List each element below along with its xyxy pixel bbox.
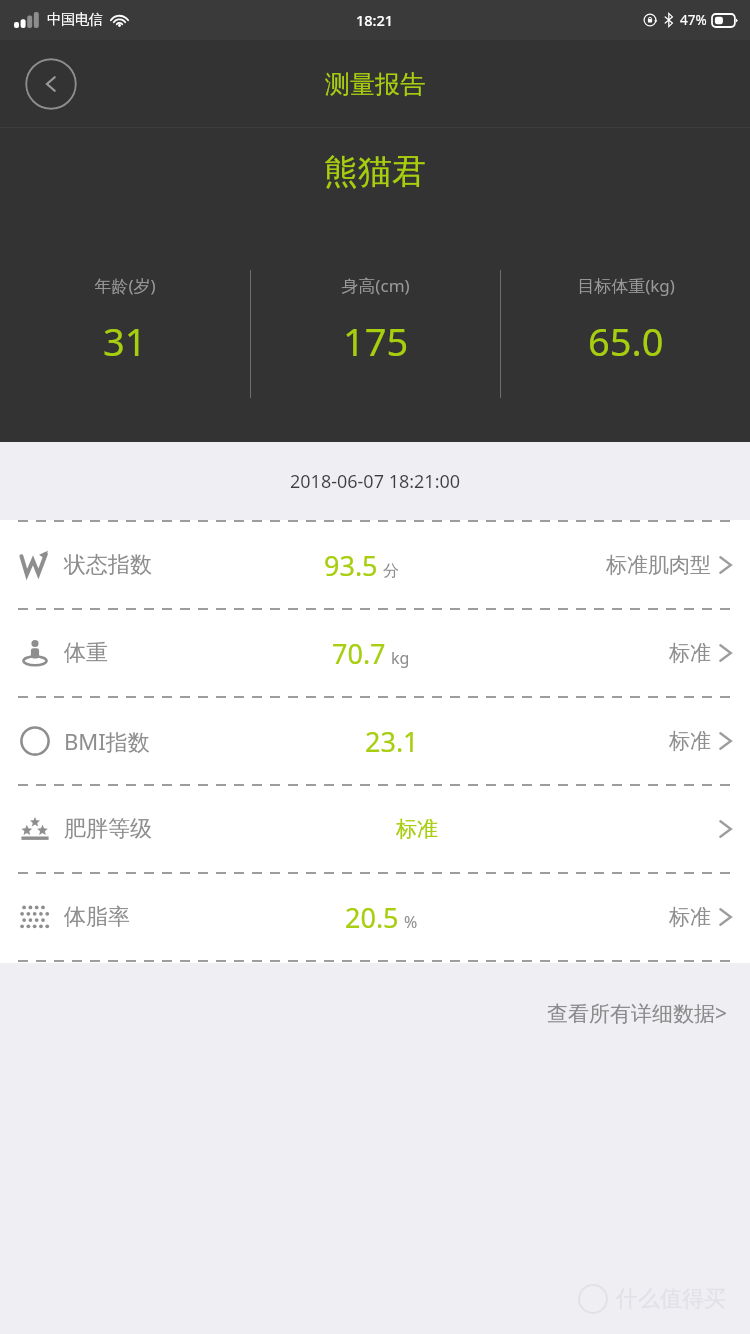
- staticText: 状态指数: [64, 551, 152, 579]
- button[interactable]: 体脂率: [0, 874, 750, 960]
- staticText: 熊猫君: [324, 150, 426, 193]
- staticText: kg: [391, 647, 410, 669]
- staticText: 20.5: [345, 899, 399, 936]
- staticText: 身高(cm): [341, 274, 410, 297]
- button[interactable]: 状态指数: [0, 522, 750, 608]
- staticText: 肥胖等级: [64, 815, 152, 843]
- staticText: 47%: [680, 11, 707, 29]
- button[interactable]: 肥胖等级: [0, 786, 750, 872]
- staticText: 2018-06-07 18:21:00: [290, 469, 461, 494]
- staticText: 70.7: [332, 635, 386, 672]
- staticText: 标准: [669, 904, 711, 930]
- button[interactable]: Back: [25, 58, 77, 110]
- staticText: 175: [343, 315, 409, 367]
- staticText: 标准: [669, 728, 711, 754]
- staticText: 23.1: [365, 723, 419, 760]
- button[interactable]: BMI指数: [0, 698, 750, 784]
- staticText: 标准: [669, 640, 711, 666]
- staticText: 年龄(岁): [94, 274, 156, 297]
- staticText: 65.0: [588, 315, 664, 367]
- staticText: 18:21: [356, 10, 394, 30]
- staticText: 体脂率: [64, 903, 130, 931]
- staticText: 标准: [396, 816, 438, 842]
- button[interactable]: 查看所有详细数据>: [539, 989, 736, 1038]
- staticText: 查看所有详细数据>: [547, 999, 728, 1028]
- staticText: 什么值得买: [616, 1285, 726, 1313]
- staticText: %: [404, 911, 418, 933]
- staticText: 中国电信: [47, 11, 103, 29]
- staticText: 31: [103, 315, 147, 367]
- staticText: 93.5: [324, 547, 378, 584]
- staticText: 分: [383, 561, 399, 581]
- staticText: BMI指数: [64, 726, 150, 756]
- staticText: 目标体重(kg): [577, 274, 675, 297]
- staticText: 体重: [64, 639, 108, 667]
- staticText: 标准肌肉型: [606, 552, 711, 578]
- staticText: 测量报告: [325, 69, 425, 100]
- button[interactable]: 体重: [0, 610, 750, 696]
